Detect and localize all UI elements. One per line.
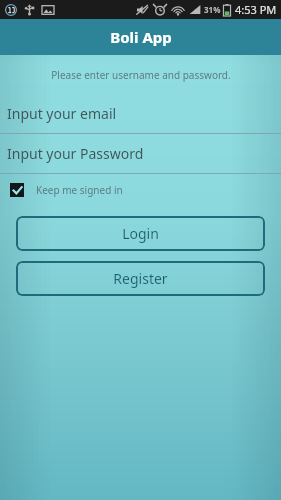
button[interactable]: Input your Password [0,134,281,173]
button[interactable]: Input your email [0,94,281,133]
staticText: 31% [204,4,221,15]
staticText: 4:53 PM [235,2,277,17]
staticText: Input your email [7,104,117,123]
button[interactable]: Register [16,261,265,296]
staticText: Keep me signed in [36,183,123,197]
button[interactable]: Keep me signed in [0,174,281,206]
staticText: Input your Password [7,144,144,163]
staticText: Please enter username and password. [51,68,231,82]
staticText: Login [122,224,159,243]
button[interactable]: Login [16,216,265,251]
staticText: Boli App [110,27,172,47]
staticText: Register [113,269,168,288]
